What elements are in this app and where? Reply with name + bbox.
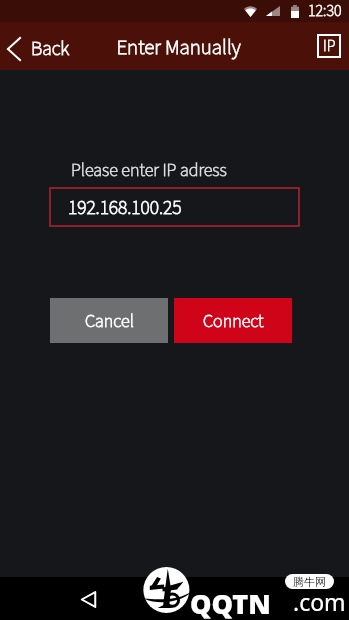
staticText: Please enter IP adress (71, 158, 227, 184)
staticText: Enter Manually (116, 32, 241, 62)
button[interactable]: Back (6, 22, 70, 70)
staticText: Back (31, 35, 70, 63)
button[interactable]: IP (317, 34, 341, 58)
staticText: Connect (203, 309, 264, 335)
button[interactable]: 192.168.100.25 (49, 187, 300, 227)
staticText: 192.168.100.25 (68, 194, 182, 222)
staticText: 12:30 (308, 0, 342, 22)
staticText: Cancel (85, 309, 134, 335)
staticText: IP (323, 35, 336, 58)
button[interactable]: Cancel (50, 298, 168, 343)
button[interactable]: Back (70, 581, 106, 617)
button[interactable]: Connect (174, 298, 292, 343)
staticText: QQTN (190, 585, 271, 620)
staticText: .com (293, 586, 346, 617)
staticText: 腾牛网 (293, 575, 326, 589)
